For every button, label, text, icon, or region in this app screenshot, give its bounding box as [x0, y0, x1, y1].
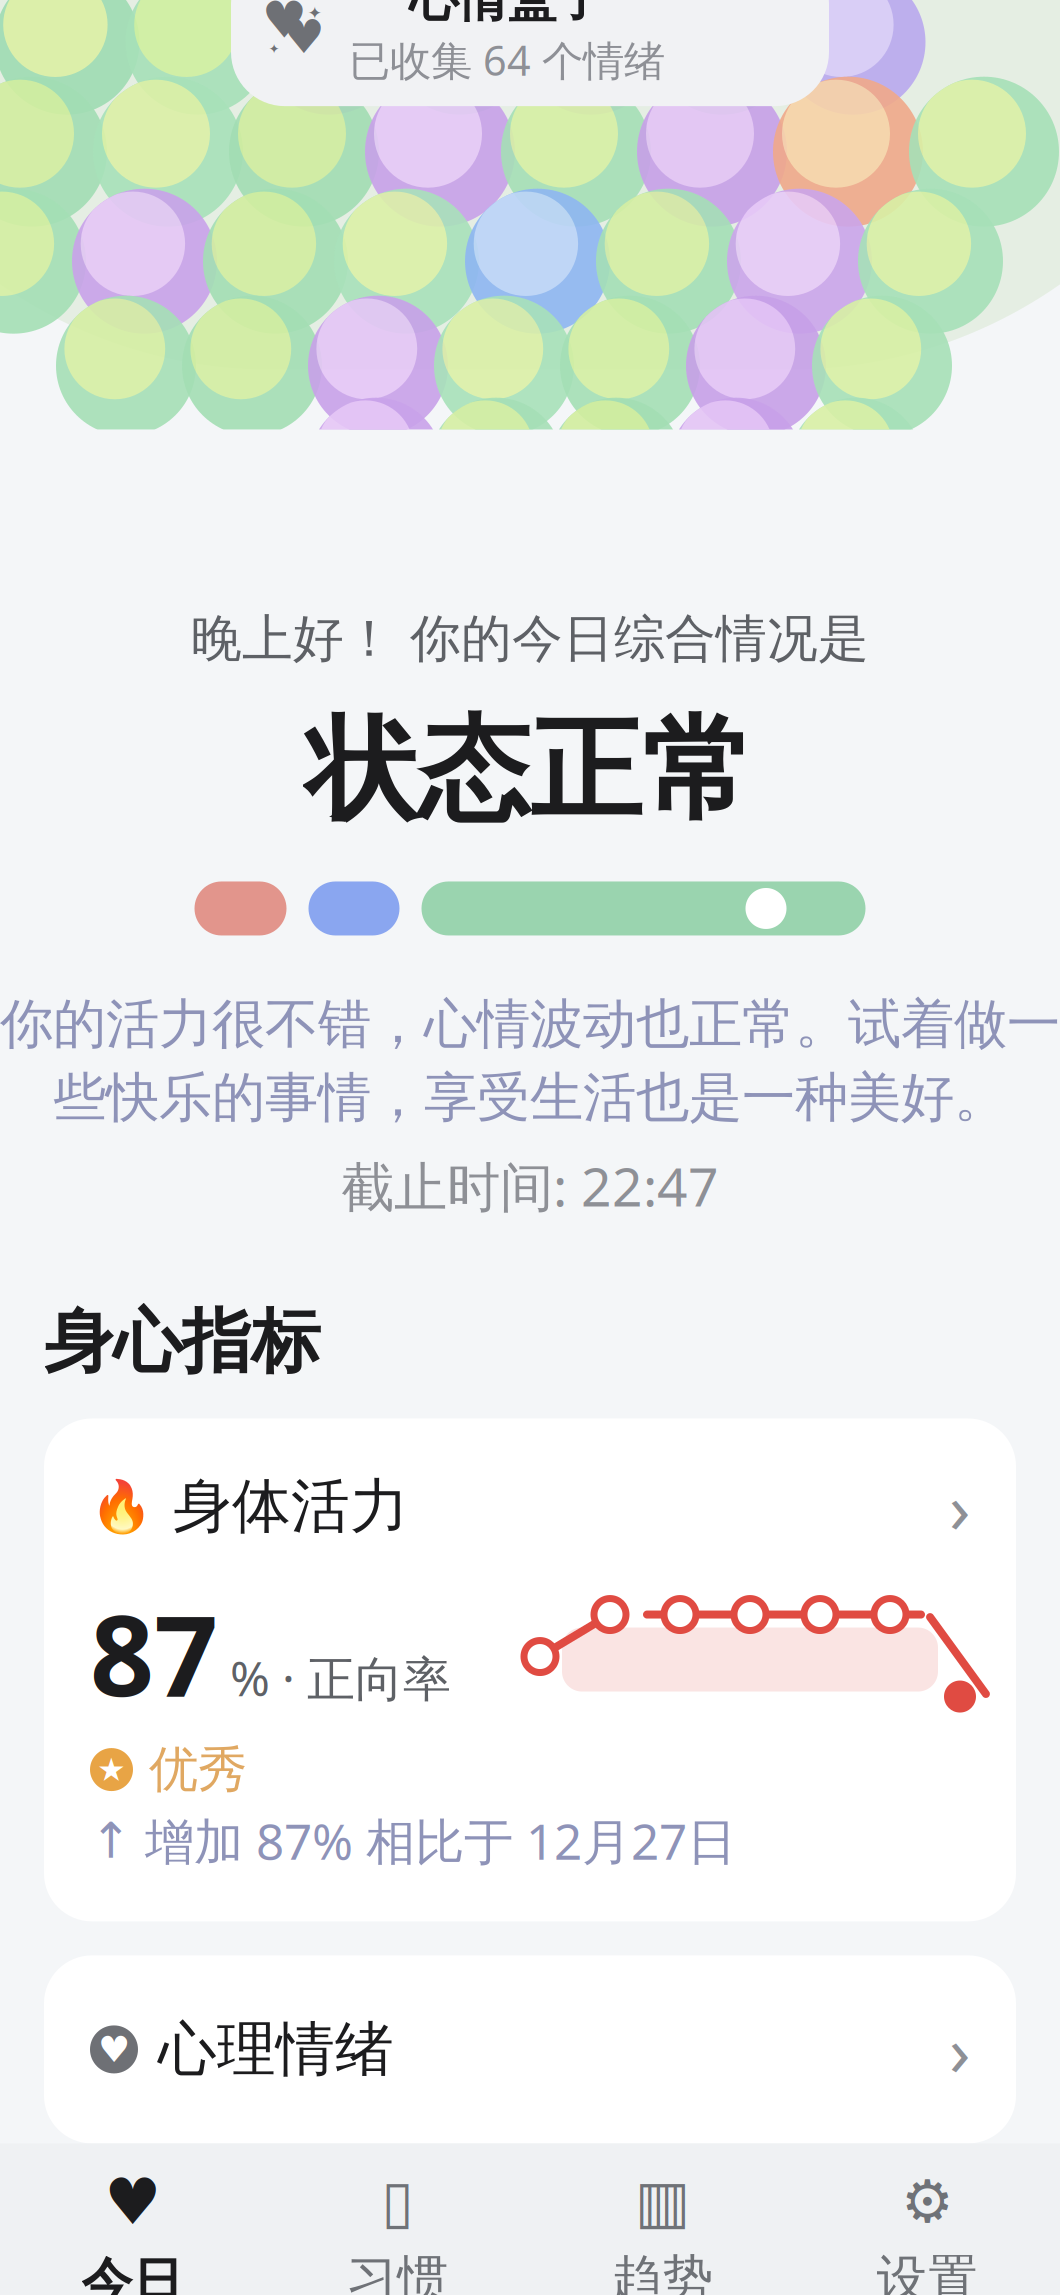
staticText: 今日 — [81, 2251, 183, 2295]
staticText: 设置 — [876, 2248, 978, 2295]
staticText: 🔥 — [90, 1478, 153, 1535]
staticText: 心情盒子 — [409, 0, 605, 29]
staticText: 身心指标 — [44, 1299, 320, 1384]
staticText: 晚上好！ 你的今日综合情况是 — [191, 608, 869, 670]
button[interactable]: 习惯 — [265, 2146, 530, 2295]
staticText: ▯ — [381, 2168, 413, 2235]
staticText: 身体活力 — [173, 1470, 409, 1543]
staticText: 些快乐的事情，享受生活也是一种美好。 — [53, 1065, 1007, 1130]
staticText: 状态正常 — [306, 702, 754, 839]
staticText: 优秀 — [149, 1739, 247, 1800]
staticText: ✦ — [307, 3, 322, 23]
staticText: ✦ — [268, 41, 279, 56]
staticText: ♥ — [104, 2165, 161, 2238]
staticText: 你的活力很不错，心情波动也正常。试着做一 — [0, 991, 1060, 1057]
button[interactable]: ♥ — [231, 0, 829, 106]
staticText: ♥ — [261, 0, 306, 49]
button[interactable]: ♥ — [44, 1955, 1016, 2143]
staticText: ★ — [97, 1751, 126, 1788]
staticText: ⚙ — [901, 2168, 954, 2235]
staticText: 趋势 — [611, 2248, 713, 2295]
staticText: 87 — [90, 1578, 218, 1727]
staticText: 习惯 — [346, 2248, 448, 2295]
staticText: ♥ — [283, 10, 325, 63]
button[interactable]: 今日 — [0, 2143, 265, 2295]
staticText: ↑ — [90, 1813, 131, 1869]
staticText: % · 正向率 — [230, 1646, 451, 1710]
button[interactable]: 设置 — [795, 2146, 1060, 2295]
staticText: ▥ — [635, 2168, 690, 2235]
staticText: ♥ — [98, 2029, 130, 2070]
staticText: › — [949, 1460, 970, 1553]
button[interactable]: 趋势 — [530, 2146, 795, 2295]
staticText: 已收集 64 个情绪 — [349, 32, 665, 87]
staticText: 截止时间: 22:47 — [341, 1150, 719, 1221]
staticText: 心理情绪 — [158, 2013, 394, 2085]
staticText: › — [949, 2003, 970, 2095]
staticText: 增加 87% 相比于 12月27日 — [145, 1808, 736, 1873]
button[interactable]: 🔥 — [44, 1418, 1016, 1921]
